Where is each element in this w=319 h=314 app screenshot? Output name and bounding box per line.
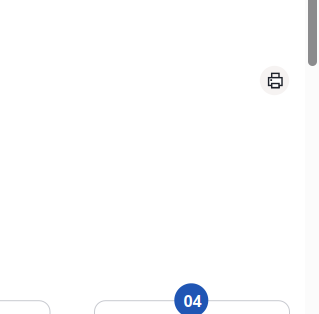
button[interactable]: Print <box>260 66 289 95</box>
button[interactable]: Step 3 <box>0 301 50 314</box>
staticText: 04 <box>183 290 201 311</box>
button[interactable]: Step 4 <box>94 301 289 314</box>
